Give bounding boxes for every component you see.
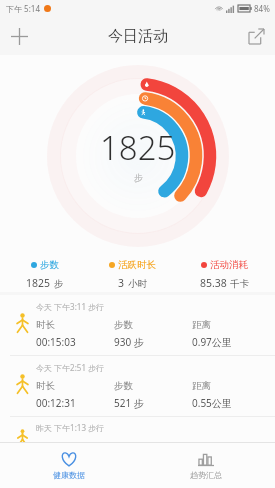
staticText: 今日活动	[108, 27, 168, 46]
staticText: 活跃时长	[118, 259, 156, 271]
button[interactable]: Add	[0, 17, 38, 55]
staticText: 距离	[192, 319, 211, 331]
staticText: 千卡	[230, 278, 249, 290]
button[interactable]: 昨天 下午1:13 步行	[0, 417, 275, 441]
staticText: 1825	[100, 125, 176, 170]
staticText: 步	[54, 278, 64, 290]
staticText: 0.97公里	[192, 335, 232, 349]
staticText: 3	[118, 276, 125, 290]
staticText: 步数	[40, 259, 59, 271]
staticText: 时长	[36, 380, 55, 392]
staticText: 趋势汇总	[190, 470, 222, 480]
staticText: 今天 下午2:51 步行	[36, 362, 105, 373]
staticText: 健康数据	[53, 470, 85, 480]
staticText: 活动消耗	[210, 259, 248, 271]
staticText: 步	[134, 172, 143, 183]
button[interactable]: Health data	[0, 443, 137, 488]
staticText: 步数	[114, 319, 133, 331]
staticText: 昨天 下午1:13 步行	[36, 422, 105, 433]
staticText: 今天 下午3:11 步行	[36, 301, 105, 312]
button[interactable]: 今天 下午3:11 步行	[0, 295, 275, 355]
staticText: 1825	[26, 276, 51, 290]
staticText: 小时	[128, 278, 147, 290]
button[interactable]: Share	[237, 17, 275, 55]
button[interactable]: 今天 下午2:51 步行	[0, 356, 275, 416]
staticText: 步数	[114, 380, 133, 392]
staticText: 时长	[36, 319, 55, 331]
button[interactable]: Trends	[137, 443, 275, 488]
staticText: 521 步	[114, 396, 144, 410]
button[interactable]: 步数	[26, 259, 64, 290]
button[interactable]: 活跃时长	[109, 259, 156, 290]
staticText: 85.38	[200, 276, 227, 290]
staticText: 00:12:31	[36, 396, 76, 410]
staticText: 距离	[192, 380, 211, 392]
staticText: 00:15:03	[36, 335, 76, 349]
staticText: 84%	[254, 3, 270, 14]
button[interactable]: 活动消耗	[200, 259, 249, 290]
staticText: 0.55公里	[192, 396, 232, 410]
staticText: 下午 5:14	[6, 3, 40, 14]
staticText: 930 步	[114, 335, 144, 349]
